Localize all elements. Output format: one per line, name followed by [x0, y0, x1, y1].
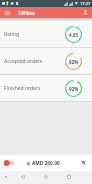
button[interactable]: Go online toggle — [3, 159, 15, 167]
button[interactable]: Home — [40, 171, 52, 184]
button[interactable]: Back — [17, 171, 29, 184]
button[interactable]: Recent apps — [63, 171, 75, 184]
button[interactable]: Notifications off — [76, 155, 90, 171]
staticText: Offline — [18, 9, 35, 16]
staticText: Rating — [4, 31, 20, 38]
button[interactable]: Finished orders — [0, 75, 92, 101]
staticText: AMD 260.00 — [32, 160, 60, 167]
button[interactable]: Rating — [0, 21, 92, 47]
button[interactable]: Account — [78, 7, 92, 18]
staticText: Finished orders — [4, 85, 41, 92]
staticText: 4.83 — [69, 32, 79, 38]
button[interactable]: Accepted orders — [0, 48, 92, 74]
staticText: 82% — [69, 59, 79, 65]
button[interactable]: Menu — [0, 7, 18, 18]
staticText: 92% — [69, 86, 79, 92]
staticText: 17:37 — [80, 1, 91, 6]
staticText: Accepted orders — [4, 58, 43, 65]
